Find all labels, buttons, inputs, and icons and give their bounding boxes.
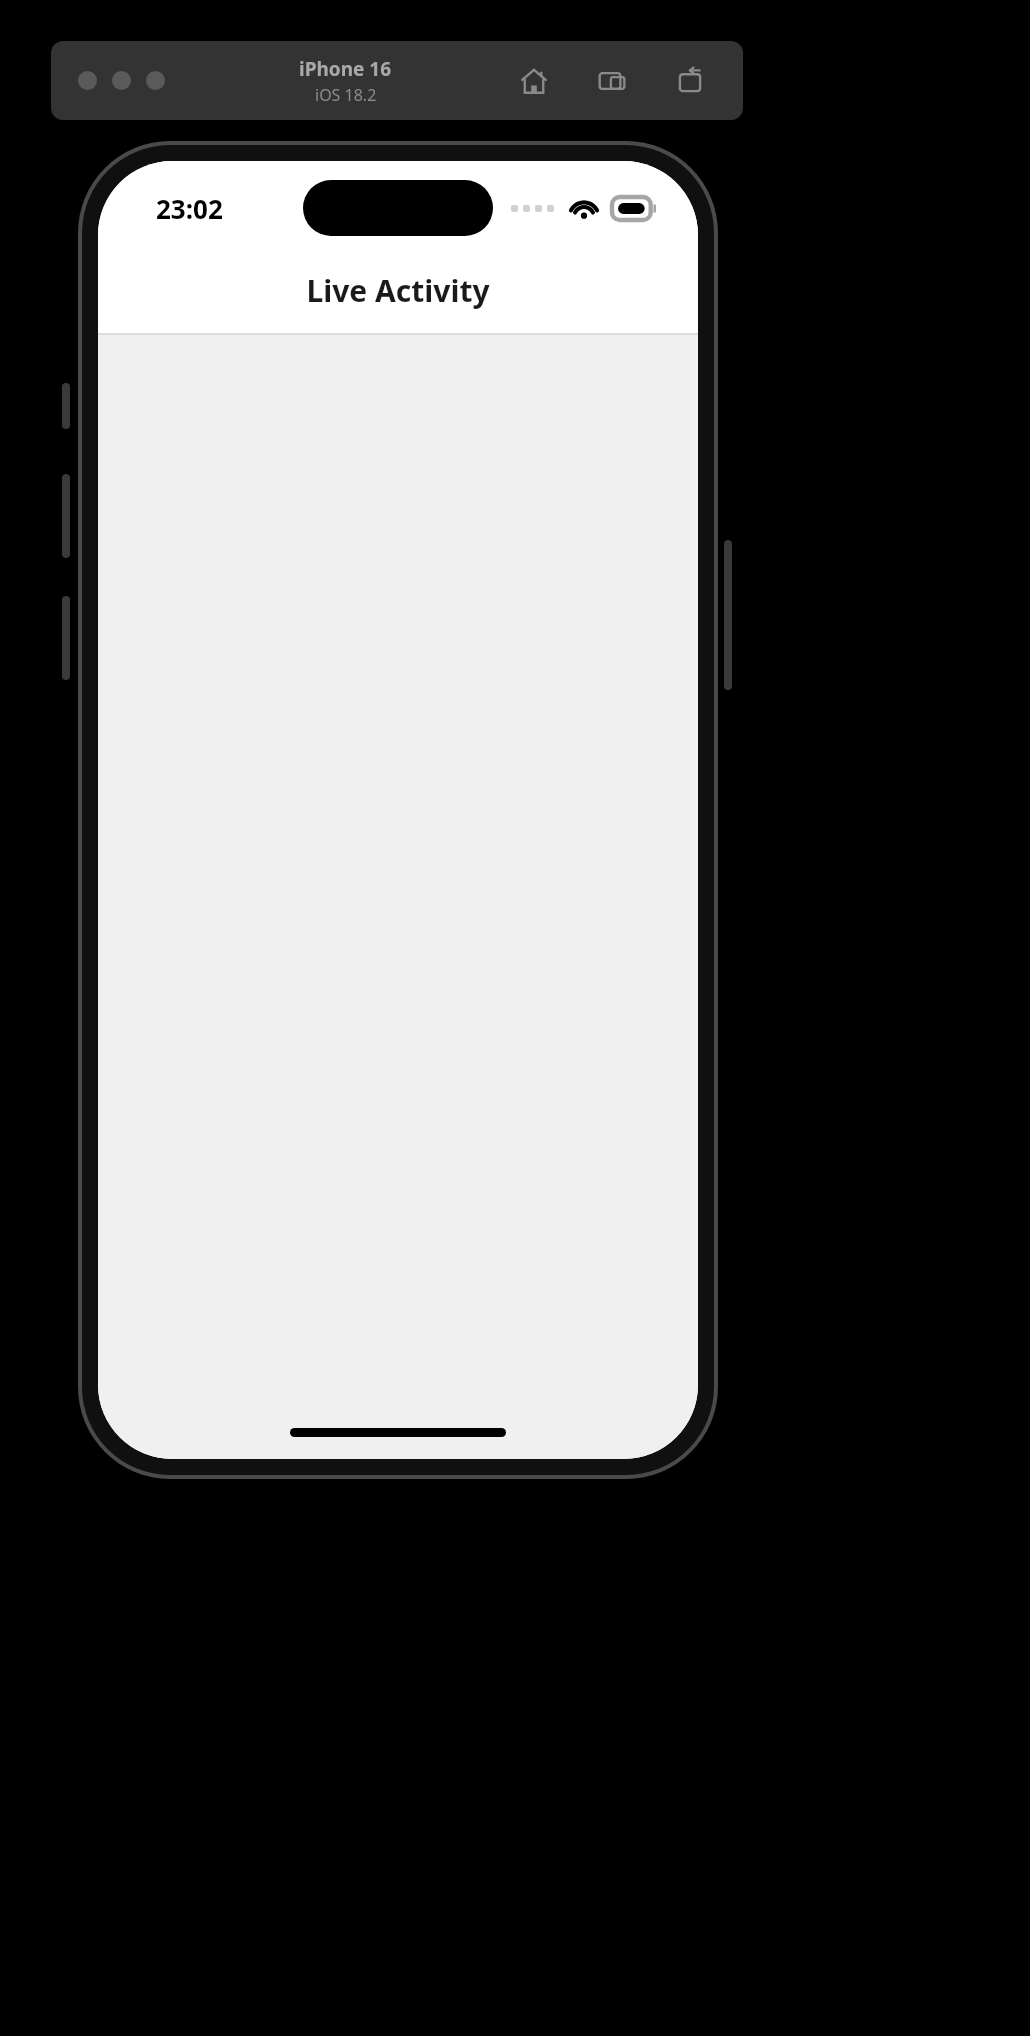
button[interactable]: Screenshot (595, 64, 629, 98)
button[interactable] (146, 71, 165, 90)
staticText: Live Activity (306, 270, 490, 311)
staticText: iPhone 16 (299, 56, 392, 82)
staticText: iOS 18.2 (315, 84, 377, 106)
staticText: 23:02 (156, 191, 223, 226)
button[interactable] (78, 71, 97, 90)
button[interactable]: Rotate (673, 64, 707, 98)
button[interactable]: Home (517, 64, 551, 98)
button[interactable] (112, 71, 131, 90)
